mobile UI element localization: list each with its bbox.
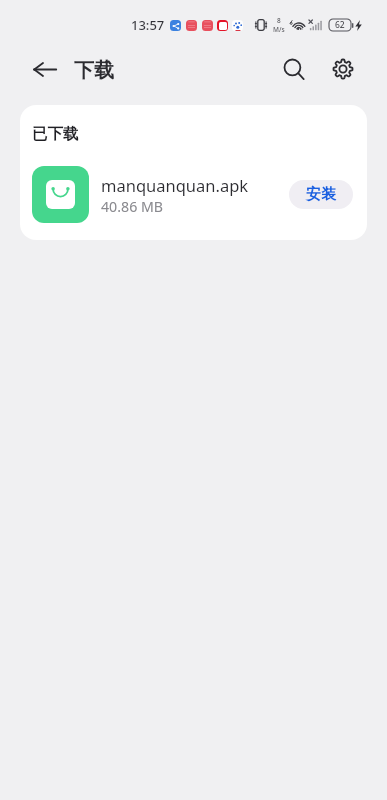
button[interactable]: Back (26, 51, 62, 87)
button[interactable]: manquanquan.apk (32, 166, 353, 223)
button[interactable]: Settings (325, 51, 361, 87)
staticText: 13:57 (131, 16, 165, 34)
staticText: M/s (273, 25, 285, 34)
staticText: 40.86 MB (101, 197, 164, 216)
button[interactable]: Search (276, 51, 312, 87)
button[interactable]: 安装 (289, 180, 353, 209)
staticText: 下载 (74, 58, 114, 83)
staticText: 安装 (306, 185, 336, 204)
staticText: 已下载 (32, 124, 79, 144)
staticText: manquanquan.apk (101, 174, 249, 196)
staticText: 8 (277, 16, 281, 25)
staticText: 62 (335, 19, 345, 31)
